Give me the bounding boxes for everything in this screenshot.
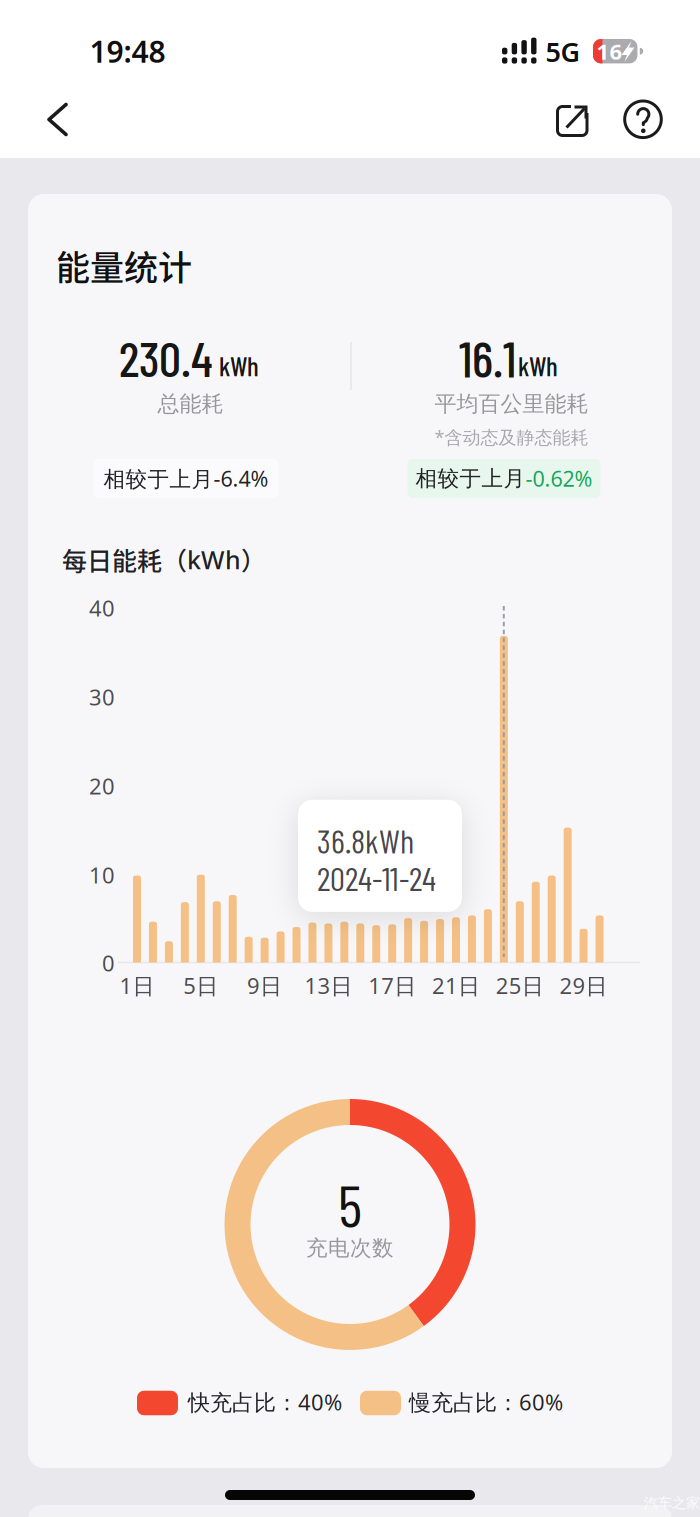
staticText: 慢充占比：60% <box>409 1387 563 1417</box>
staticText: 21日 <box>432 970 480 1000</box>
staticText: -0.62% <box>525 464 592 493</box>
staticText: *含动态及静态能耗 <box>434 425 588 449</box>
staticText: 36.8kWh <box>317 820 414 860</box>
staticText: 29日 <box>560 970 608 1000</box>
staticText: 每日能耗（ <box>62 541 187 578</box>
staticText: 相较于上月 <box>415 465 525 492</box>
staticText: 9日 <box>247 970 282 1000</box>
staticText: 充电次数 <box>306 1234 394 1262</box>
staticText: 2024-11-24 <box>317 857 436 898</box>
staticText: 25日 <box>496 970 544 1000</box>
staticText: 10 <box>89 860 115 890</box>
staticText: 5 <box>338 1169 362 1239</box>
staticText: 20 <box>89 771 115 801</box>
staticText: 快充占比：40% <box>188 1387 342 1417</box>
staticText: 总能耗 <box>157 390 223 418</box>
staticText: kWh <box>219 349 259 382</box>
staticText: 30 <box>89 682 115 712</box>
staticText: 汽车之家 <box>644 1494 700 1512</box>
staticText: 16.1 <box>459 327 516 387</box>
staticText: 5日 <box>183 970 218 1000</box>
staticText: 5G <box>545 33 580 70</box>
staticText: 1日 <box>119 970 154 1000</box>
staticText: 17日 <box>368 970 416 1000</box>
staticText: kWh <box>187 542 241 576</box>
staticText: ） <box>241 541 266 578</box>
staticText: 相较于上月-6.4% <box>103 464 268 493</box>
staticText: 13日 <box>304 970 352 1000</box>
staticText: 19:48 <box>89 31 165 71</box>
staticText: 230.4 <box>119 328 213 387</box>
staticText: kWh <box>518 349 558 382</box>
staticText: 能量统计 <box>56 241 192 290</box>
staticText: 平均百公里能耗 <box>434 390 588 418</box>
staticText: 40 <box>89 593 115 623</box>
staticText: 16 <box>596 36 622 66</box>
staticText: 0 <box>102 948 115 978</box>
